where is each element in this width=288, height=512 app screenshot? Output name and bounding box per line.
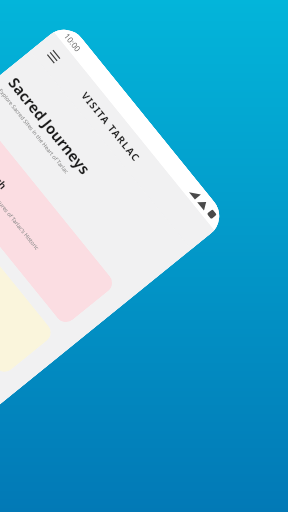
button[interactable]: Church — [0, 113, 116, 326]
staticText: VISITA TARLAC — [78, 89, 143, 164]
button[interactable]: Sacred Sites — [0, 162, 55, 376]
staticText: Explore the Treasures of Tarlac's Histor… — [0, 166, 41, 255]
staticText: Sacred Journeys — [4, 73, 95, 179]
staticText: 10:00 — [62, 31, 84, 54]
staticText: Church — [0, 156, 10, 192]
button[interactable]: Menu — [41, 43, 66, 69]
staticText: Explore Sacred Sites in the Heart of Tar… — [0, 87, 71, 175]
